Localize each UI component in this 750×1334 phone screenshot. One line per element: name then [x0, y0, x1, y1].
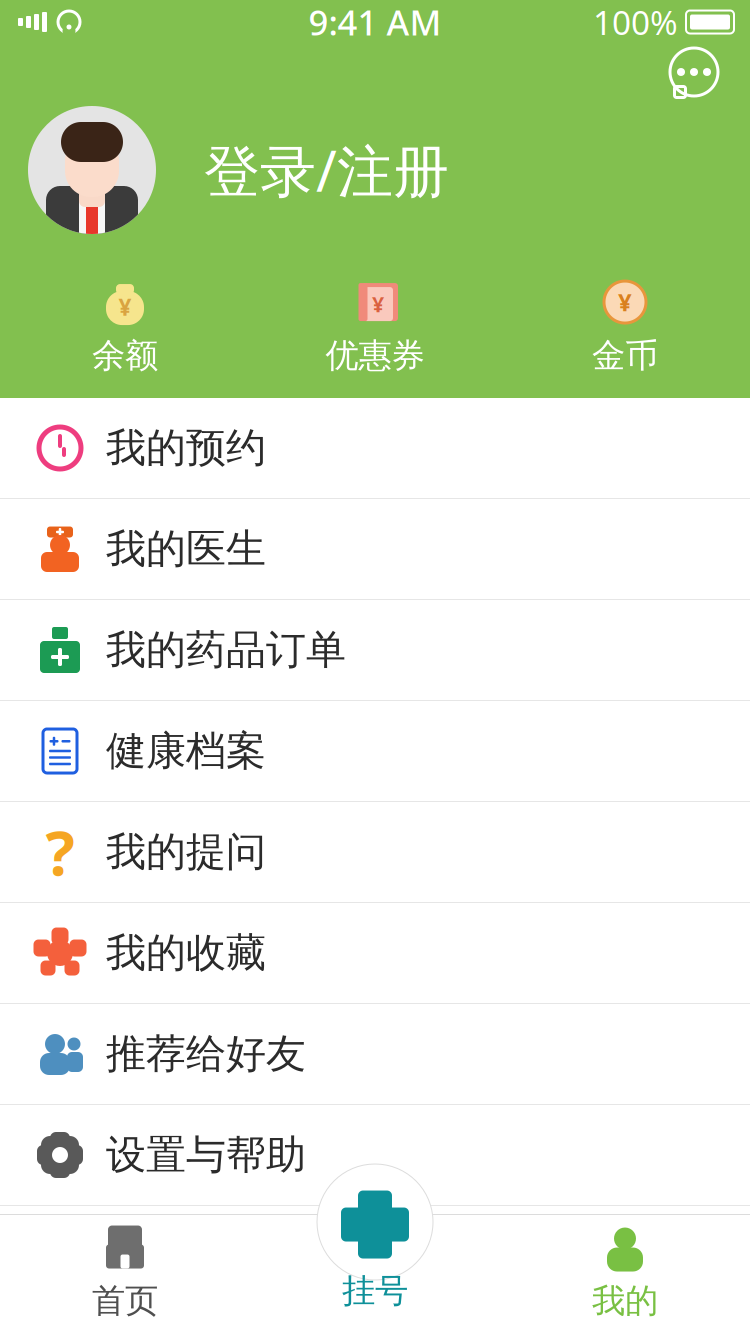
button[interactable]: 推荐给好友 [0, 1004, 750, 1105]
staticText: ¥ [618, 286, 632, 318]
button[interactable]: 健康档案 [0, 701, 750, 802]
staticText: 9:41 AM [308, 0, 441, 45]
staticText: 优惠券 [325, 335, 424, 376]
button[interactable]: 我的预约 [0, 398, 750, 499]
staticText: 100% [593, 0, 678, 44]
staticText: 我的 [592, 1280, 658, 1321]
button[interactable]: 我的收藏 [0, 903, 750, 1004]
button[interactable]: 设置与帮助 [0, 1105, 750, 1206]
staticText: 设置与帮助 [106, 1130, 306, 1179]
staticText: 我的收藏 [106, 928, 266, 977]
button[interactable]: 首页 [0, 1218, 250, 1329]
staticText: 首页 [92, 1280, 158, 1321]
button[interactable]: ¥ [250, 271, 500, 382]
staticText: 我的提问 [106, 827, 266, 876]
staticText: ¥ [118, 292, 131, 322]
staticText: 我的预约 [106, 423, 266, 472]
staticText: ? [45, 811, 74, 893]
button[interactable]: 我的药品订单 [0, 600, 750, 701]
staticText: 登录/注册 [204, 133, 449, 207]
staticText: 推荐给好友 [106, 1029, 306, 1078]
button[interactable]: 消息 [666, 44, 750, 100]
staticText: 我的药品订单 [106, 625, 346, 674]
button[interactable]: 头像 [0, 106, 156, 234]
button[interactable]: ? [0, 802, 750, 903]
button[interactable]: ¥ [0, 271, 250, 382]
staticText: 挂号 [342, 1270, 408, 1311]
button[interactable]: 挂号 [250, 1206, 500, 1334]
staticText: 余额 [92, 335, 158, 376]
button[interactable]: 我的医生 [0, 499, 750, 600]
button[interactable]: ¥ [500, 271, 750, 382]
staticText: 健康档案 [106, 726, 266, 775]
staticText: 我的医生 [106, 524, 266, 573]
button[interactable]: 我的 [500, 1218, 750, 1329]
staticText: ¥ [372, 290, 384, 318]
button[interactable]: 登录/注册 [156, 121, 449, 219]
staticText: 金币 [592, 335, 658, 376]
